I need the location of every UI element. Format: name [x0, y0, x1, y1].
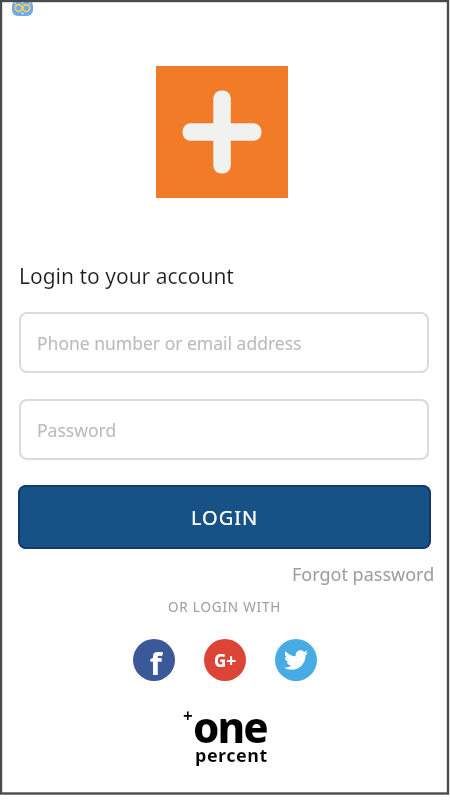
staticText: Password [37, 418, 117, 442]
button[interactable]: Phone number or email address [19, 312, 429, 373]
button[interactable]: Forgot password [292, 562, 435, 587]
button[interactable]: LOGIN [18, 485, 431, 549]
staticText: percent [195, 743, 268, 768]
button[interactable]: G+ [204, 639, 246, 681]
staticText: Phone number or email address [37, 331, 302, 355]
staticText: f [150, 643, 162, 681]
staticText: OR LOGIN WITH [168, 598, 282, 616]
button[interactable]: f [133, 639, 175, 681]
staticText: one [193, 698, 267, 755]
button[interactable]: Password [19, 399, 429, 460]
staticText: + [183, 704, 193, 727]
button[interactable] [275, 639, 317, 681]
staticText: LOGIN [191, 504, 259, 531]
staticText: G+ [214, 649, 237, 672]
staticText: Login to your account [19, 262, 234, 291]
